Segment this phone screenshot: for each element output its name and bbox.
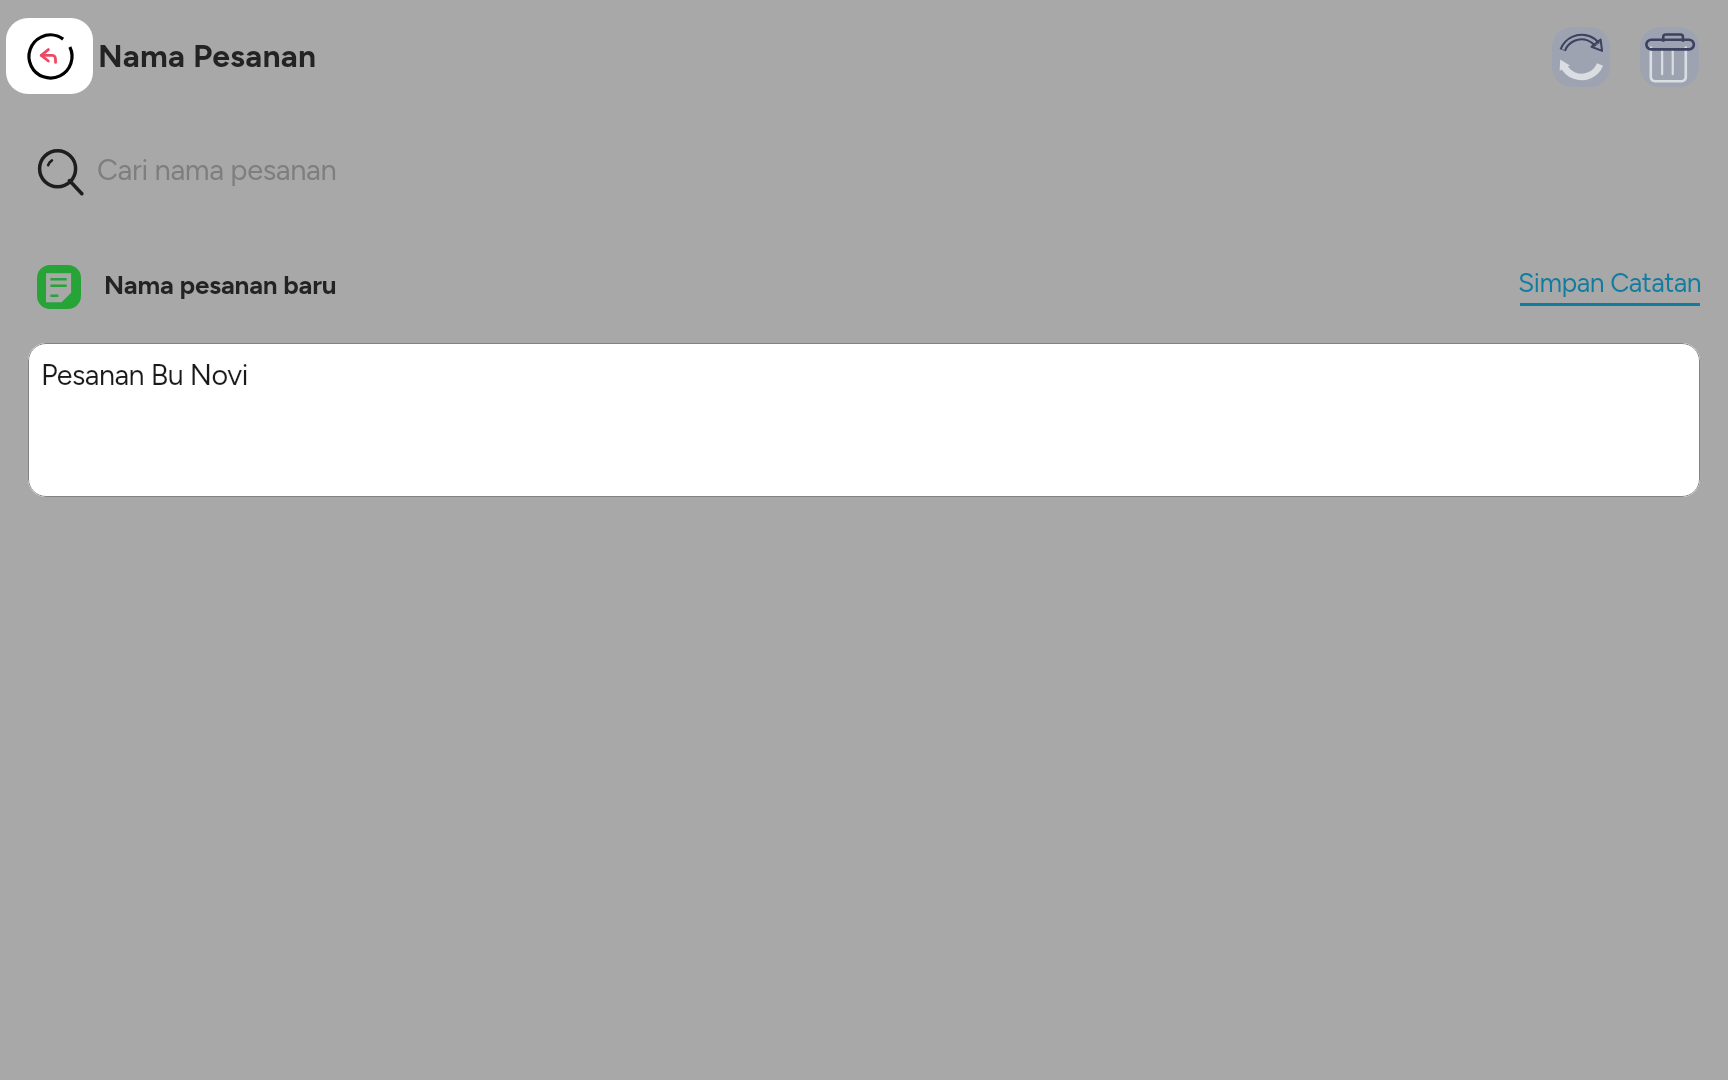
- button[interactable]: Refresh: [1552, 27, 1610, 87]
- staticText: Simpan Catatan: [1518, 267, 1702, 299]
- button[interactable]: Pesanan Bu Novi: [28, 343, 1700, 497]
- button[interactable]: Simpan Catatan: [1518, 265, 1702, 306]
- button[interactable]: Cari nama pesanan: [0, 122, 1728, 214]
- staticText: Nama Pesanan: [98, 37, 317, 75]
- staticText: Cari nama pesanan: [97, 152, 337, 187]
- button[interactable]: Delete: [1640, 27, 1699, 87]
- staticText: Nama pesanan baru: [104, 269, 337, 300]
- staticText: Pesanan Bu Novi: [41, 358, 248, 392]
- button[interactable]: New order note: [37, 265, 81, 309]
- button[interactable]: Back: [6, 18, 93, 94]
